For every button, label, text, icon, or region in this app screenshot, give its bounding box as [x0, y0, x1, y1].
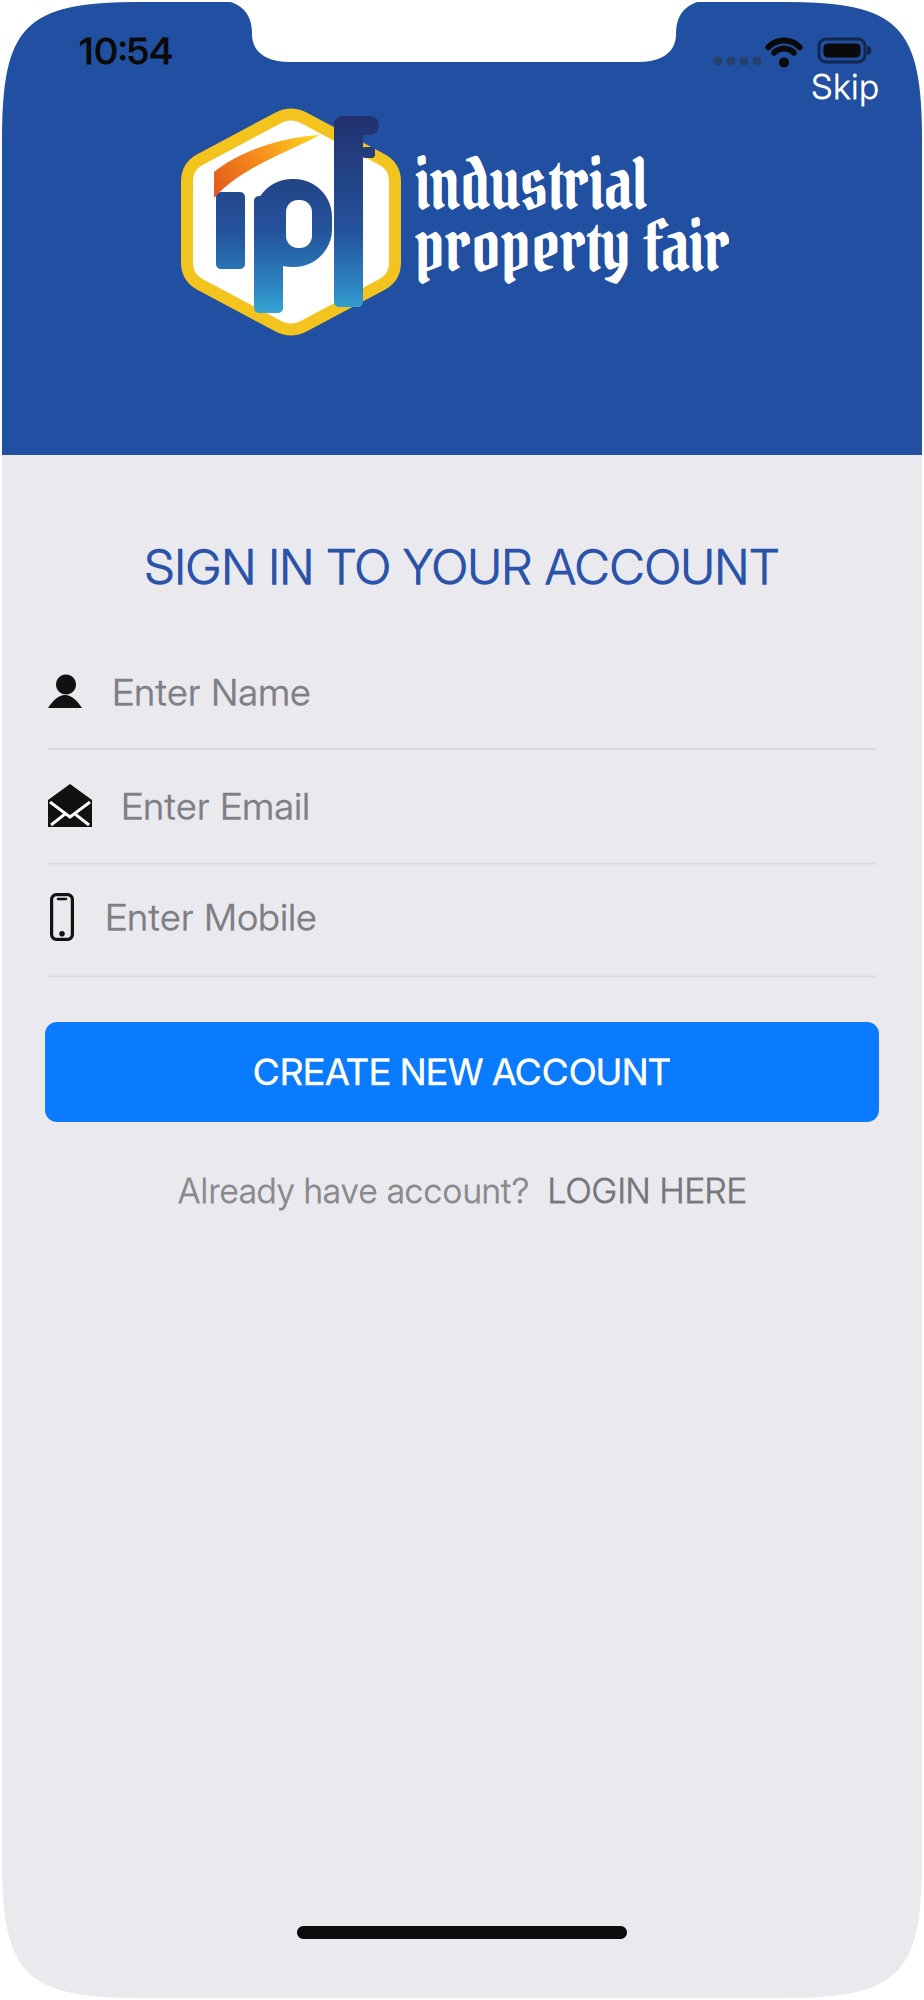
button[interactable]: LOGIN HERE [547, 1170, 746, 1212]
staticText: LOGIN HERE [547, 1170, 746, 1212]
staticText: Enter Mobile [105, 894, 317, 940]
staticText: property fair [415, 202, 730, 291]
staticText: Enter Email [121, 783, 310, 829]
staticText: CREATE NEW ACCOUNT [253, 1050, 671, 1094]
button[interactable]: CREATE NEW ACCOUNT [45, 1022, 879, 1122]
staticText: 10:54 [79, 28, 173, 74]
button[interactable]: Skip [811, 66, 879, 108]
button[interactable]: Enter Email [48, 774, 876, 838]
staticText: SIGN IN TO YOUR ACCOUNT [144, 538, 779, 596]
staticText: Already have account? [177, 1170, 529, 1212]
staticText: Skip [811, 66, 879, 108]
button[interactable]: Enter Name [48, 660, 876, 724]
staticText: industrial [415, 140, 647, 229]
staticText: Enter Name [112, 669, 311, 715]
button[interactable]: Enter Mobile [50, 885, 878, 949]
